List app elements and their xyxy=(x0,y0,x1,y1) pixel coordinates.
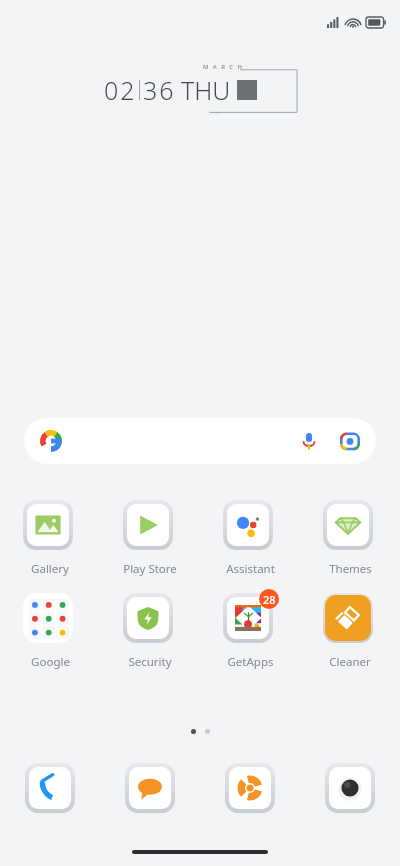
staticText: GetApps xyxy=(227,654,274,670)
button[interactable]: 02 xyxy=(100,62,300,118)
staticText: • • • xyxy=(212,110,221,117)
button[interactable]: Phone xyxy=(14,763,86,813)
other: Voice search xyxy=(300,432,318,450)
staticText: 02 xyxy=(104,73,137,107)
other: Google Search xyxy=(40,430,62,452)
button[interactable]: Google xyxy=(14,593,86,670)
button[interactable]: Gallery xyxy=(14,500,86,577)
staticText: 28 xyxy=(263,592,276,607)
staticText: Assistant xyxy=(226,561,275,577)
button[interactable]: Google Search xyxy=(24,418,376,464)
button[interactable]: Security xyxy=(114,593,186,670)
button[interactable]: Cleaner xyxy=(314,593,386,670)
staticText: Gallery xyxy=(31,561,69,577)
staticText: M A R C H xyxy=(203,63,244,71)
staticText: Play Store xyxy=(123,561,177,577)
button[interactable]: Play Store xyxy=(114,500,186,577)
staticText: Cleaner xyxy=(329,654,371,670)
staticText: Themes xyxy=(329,561,372,577)
button[interactable]: Camera xyxy=(314,763,386,813)
staticText: THU xyxy=(181,73,231,107)
staticText: Security xyxy=(128,654,172,670)
button[interactable]: Themes xyxy=(314,500,386,577)
button[interactable]: Browser xyxy=(214,763,286,813)
other: Google Lens xyxy=(340,431,360,451)
staticText: 36 xyxy=(143,73,176,107)
button[interactable]: Messages xyxy=(114,763,186,813)
button[interactable]: 28 xyxy=(214,593,286,670)
staticText: Google xyxy=(31,654,70,670)
button[interactable]: Assistant xyxy=(214,500,286,577)
